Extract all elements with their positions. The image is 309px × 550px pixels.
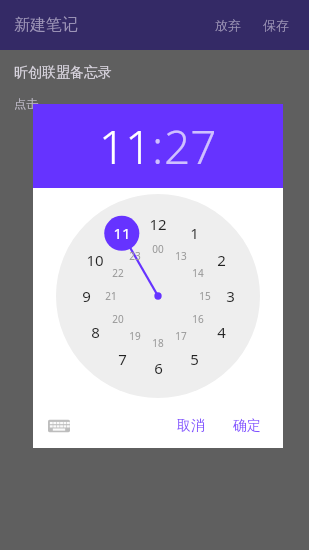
button[interactable]: 取消 bbox=[167, 411, 215, 441]
staticText: 昕创联盟备忘录 bbox=[14, 64, 112, 82]
staticText: 保存 bbox=[263, 17, 289, 33]
staticText: 16 bbox=[192, 312, 204, 326]
staticText: 22 bbox=[112, 266, 124, 280]
staticText: 4 bbox=[217, 322, 226, 342]
button[interactable]: 确定 bbox=[223, 411, 271, 441]
button[interactable]: 27 bbox=[164, 115, 217, 178]
staticText: 确定 bbox=[233, 417, 261, 435]
staticText: 21 bbox=[105, 289, 117, 303]
button[interactable]: 保存 bbox=[257, 11, 295, 39]
staticText: 点击 bbox=[14, 96, 38, 111]
staticText: 18 bbox=[152, 336, 164, 350]
staticText: : bbox=[152, 115, 164, 178]
staticText: 2 bbox=[217, 250, 226, 270]
staticText: 3 bbox=[226, 286, 235, 306]
staticText: 23 bbox=[129, 249, 141, 263]
staticText: 27 bbox=[164, 115, 217, 178]
staticText: 8 bbox=[91, 322, 100, 342]
staticText: 9 bbox=[82, 286, 91, 306]
staticText: 新建笔记 bbox=[14, 15, 78, 35]
staticText: 6 bbox=[154, 358, 163, 378]
staticText: 放弃 bbox=[215, 17, 241, 33]
button[interactable]: Clock face, hour 11 selected bbox=[56, 194, 260, 398]
button[interactable]: Switch to keyboard input bbox=[45, 412, 73, 440]
staticText: 取消 bbox=[177, 417, 205, 435]
staticText: 12 bbox=[149, 214, 167, 234]
staticText: 7 bbox=[118, 349, 127, 369]
staticText: 5 bbox=[190, 349, 199, 369]
staticText: 10 bbox=[86, 250, 104, 270]
staticText: 13 bbox=[175, 249, 187, 263]
staticText: 11 bbox=[99, 115, 152, 178]
staticText: 20 bbox=[112, 312, 124, 326]
button[interactable]: 放弃 bbox=[209, 11, 247, 39]
staticText: 1 bbox=[190, 223, 199, 243]
staticText: 17 bbox=[175, 329, 187, 343]
button[interactable]: 11 bbox=[99, 115, 152, 178]
staticText: 11 bbox=[113, 223, 131, 243]
staticText: 19 bbox=[129, 329, 141, 343]
staticText: 14 bbox=[192, 266, 204, 280]
staticText: 15 bbox=[199, 289, 211, 303]
staticText: 00 bbox=[152, 242, 164, 256]
